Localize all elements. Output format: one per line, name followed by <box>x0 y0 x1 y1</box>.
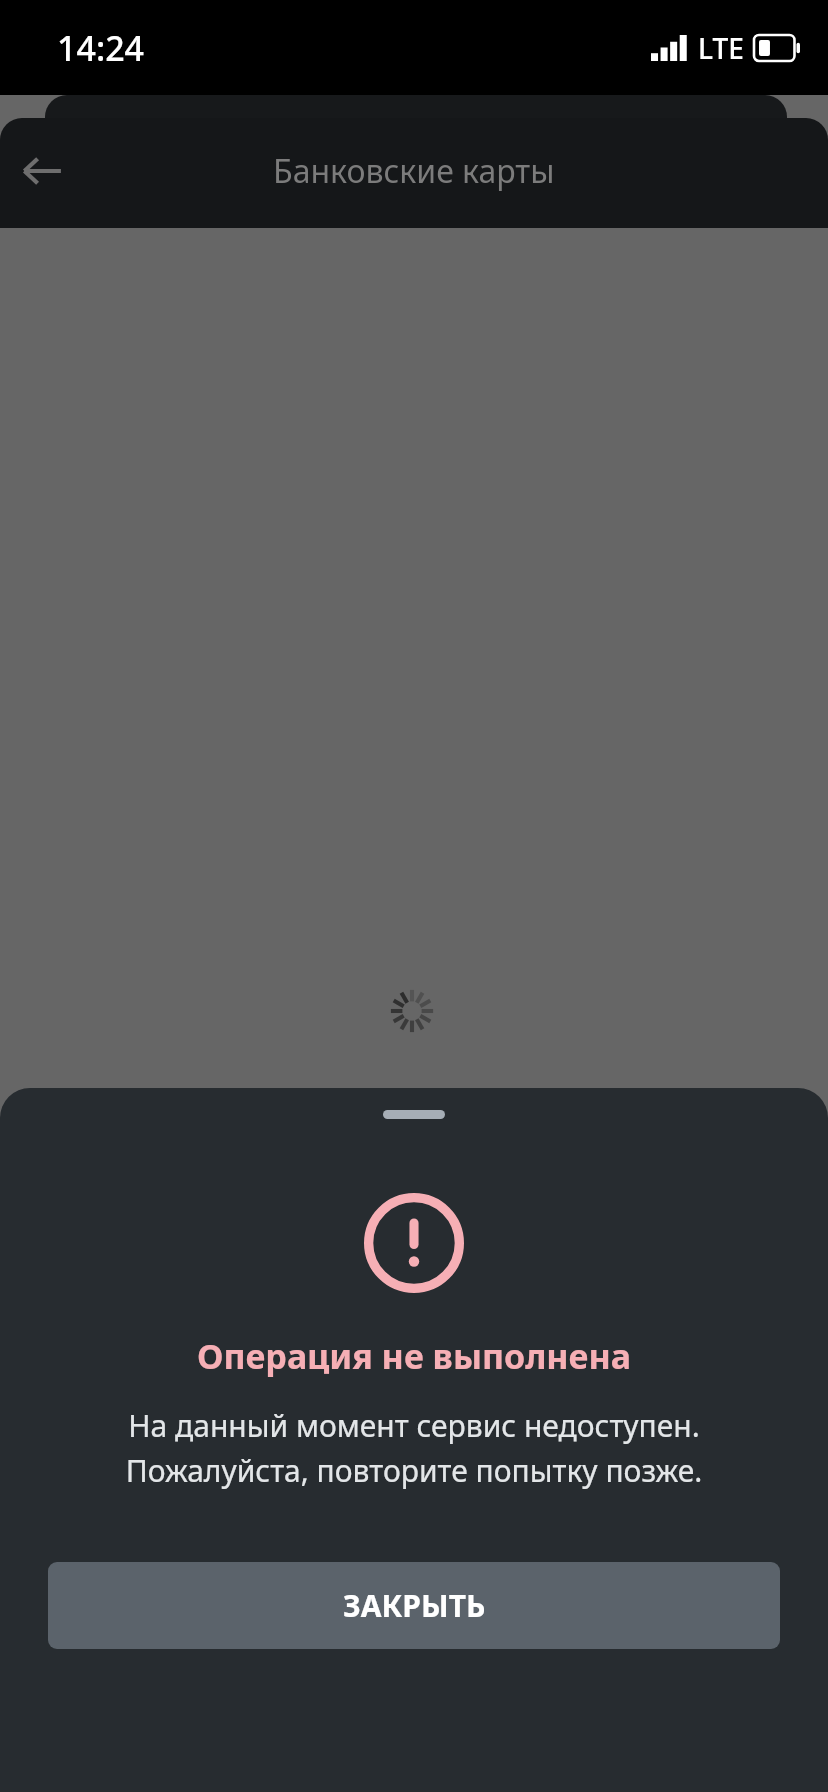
staticText: 14:24 <box>57 25 145 71</box>
staticText: На данный момент сервис недоступен. Пожа… <box>24 1405 804 1490</box>
staticText: LTE <box>698 29 744 67</box>
staticText: Банковские карты <box>273 149 555 193</box>
staticText: Операция не выполнена <box>24 1333 804 1379</box>
button[interactable]: Назад <box>0 129 84 213</box>
staticText: ЗАКРЫТЬ <box>343 1585 486 1626</box>
button[interactable]: ЗАКРЫТЬ <box>48 1562 780 1649</box>
